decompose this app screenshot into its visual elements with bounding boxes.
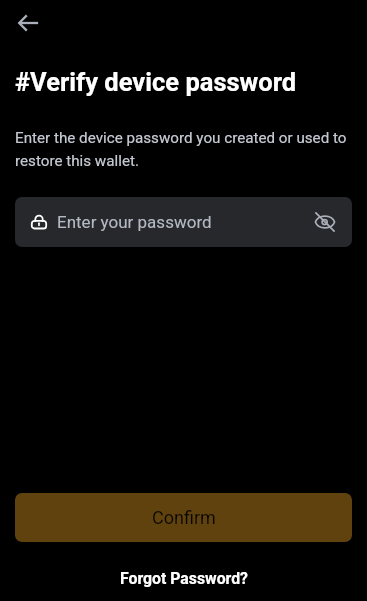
staticText: Enter your password: [57, 212, 212, 232]
staticText: Confirm: [152, 507, 216, 528]
staticText: Enter the device password you created or…: [15, 129, 352, 170]
button[interactable]: Show password: [313, 210, 337, 234]
button[interactable]: Back: [13, 8, 43, 38]
button[interactable]: Enter your password: [15, 197, 352, 247]
button[interactable]: Confirm: [15, 493, 352, 542]
staticText: #Verify device password: [15, 67, 297, 97]
button[interactable]: Forgot Password?: [120, 569, 248, 588]
